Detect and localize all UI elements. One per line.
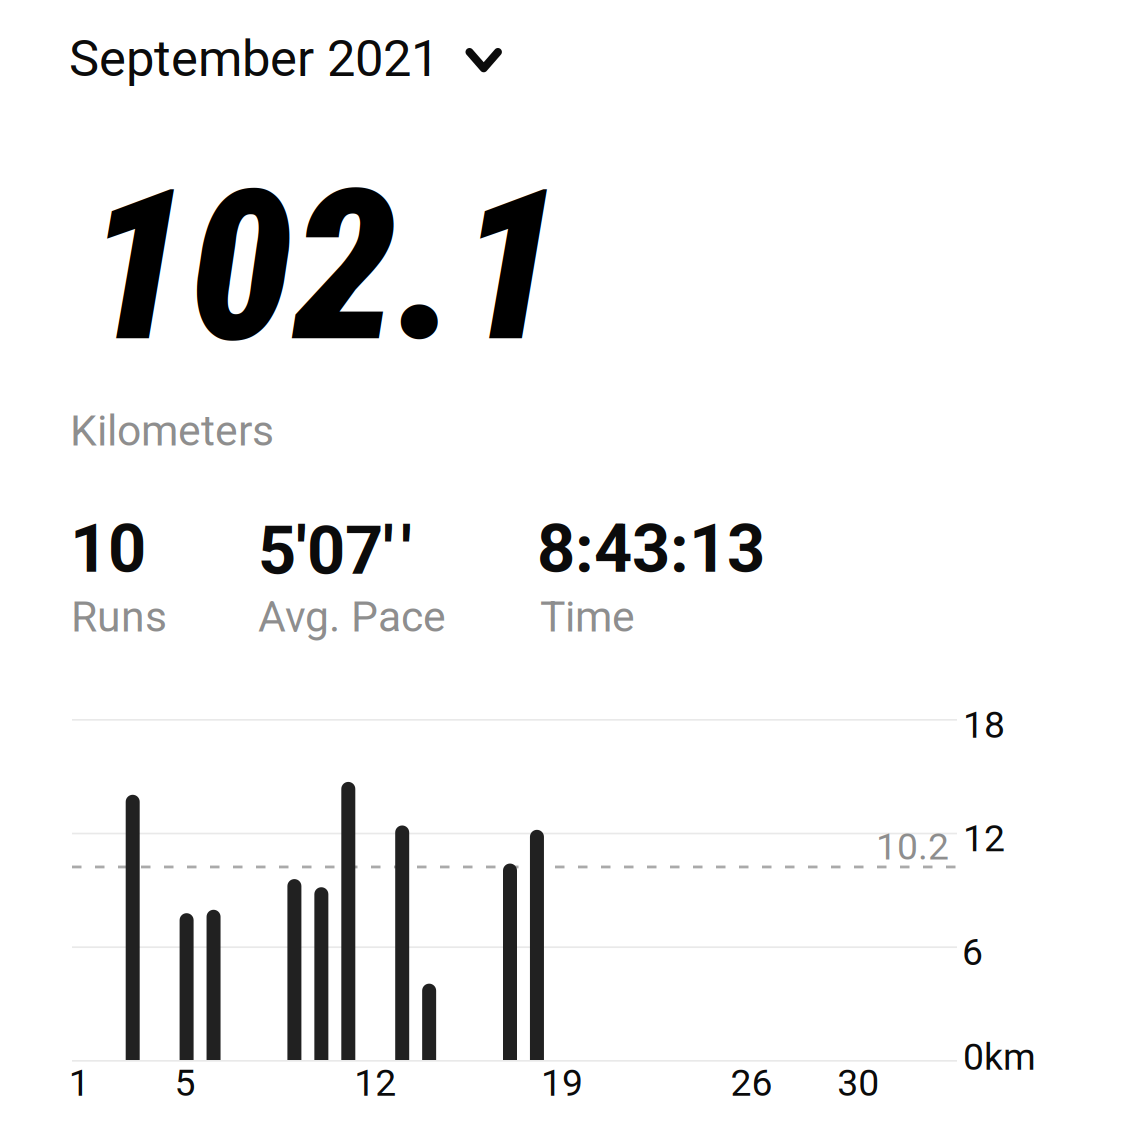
staticText: 0km [963, 1035, 1036, 1079]
staticText: 1 [69, 1061, 90, 1105]
button[interactable]: September 2021, change month [69, 10, 514, 88]
button[interactable]: September 17, 10.4 kilometers [498, 853, 522, 1060]
button[interactable]: September 9, 9.6 kilometers [282, 869, 306, 1060]
staticText: 102.1 [85, 144, 562, 389]
staticText: 30 [837, 1061, 879, 1105]
staticText: 8:43:13 [537, 510, 765, 588]
staticText: Avg. Pace [258, 592, 446, 642]
staticText: Kilometers [70, 406, 274, 456]
button[interactable]: September 11, 14.7 kilometers [336, 772, 360, 1060]
staticText: 10 [70, 510, 146, 588]
button[interactable]: September 13, 12.4 kilometers [390, 815, 414, 1060]
button[interactable]: September 5, 7.8 kilometers [175, 903, 199, 1060]
button[interactable]: September 10, 9.1 kilometers [309, 877, 333, 1060]
button[interactable]: September 3, 14.0 kilometers [121, 785, 145, 1060]
staticText: Runs [71, 592, 167, 642]
staticText: 5 [175, 1061, 196, 1105]
button[interactable]: September 6, 7.9 kilometers [202, 900, 226, 1060]
staticText: 19 [541, 1061, 583, 1105]
staticText: 12 [354, 1061, 396, 1105]
staticText: 18 [963, 703, 1005, 747]
staticText: 26 [730, 1061, 772, 1105]
button[interactable]: September 14, 4.0 kilometers [417, 974, 441, 1060]
staticText: Time [540, 592, 635, 642]
button[interactable]: September 18, 12.2 kilometers [525, 820, 549, 1060]
staticText: September 2021 [69, 29, 439, 88]
staticText: 6 [962, 930, 983, 974]
staticText: 12 [963, 817, 1005, 860]
staticText: 10.2 [876, 825, 949, 868]
staticText: 5'07' ' [258, 512, 412, 590]
